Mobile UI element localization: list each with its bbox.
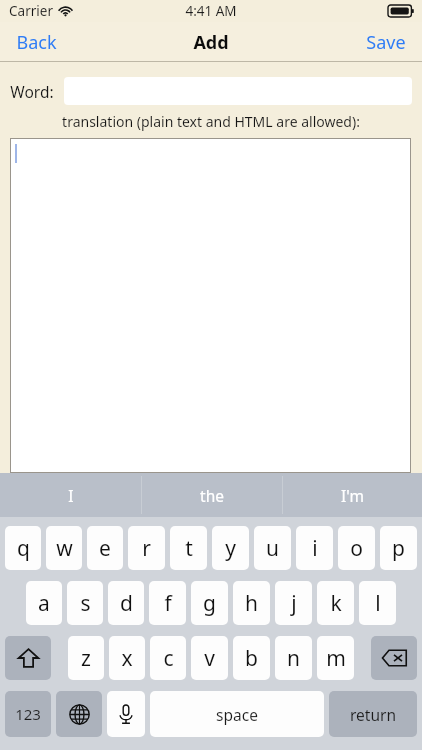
staticText: p: [392, 534, 405, 563]
staticText: 4:41 AM: [185, 2, 237, 20]
staticText: s: [80, 589, 91, 618]
button[interactable]: Dictate: [107, 691, 145, 737]
staticText: k: [330, 589, 342, 618]
staticText: I'm: [341, 485, 364, 506]
staticText: e: [99, 534, 111, 563]
staticText: f: [164, 589, 172, 618]
staticText: w: [56, 534, 73, 563]
staticText: g: [203, 589, 216, 618]
staticText: Word:: [10, 81, 54, 102]
button[interactable]: v: [191, 636, 228, 680]
staticText: o: [350, 534, 363, 563]
staticText: d: [120, 589, 133, 618]
staticText: h: [245, 589, 258, 618]
button[interactable]: I'm: [283, 473, 422, 517]
staticText: I: [68, 485, 74, 506]
button[interactable]: a: [26, 581, 62, 625]
button[interactable]: z: [68, 636, 104, 680]
staticText: Carrier: [9, 2, 53, 20]
button[interactable]: l: [359, 581, 396, 625]
staticText: l: [375, 589, 381, 618]
button[interactable]: p: [380, 526, 417, 570]
staticText: the: [200, 485, 224, 506]
button[interactable]: s: [67, 581, 103, 625]
staticText: translation (plain text and HTML are all…: [62, 112, 360, 131]
button[interactable]: space: [150, 691, 324, 737]
button[interactable]: i: [296, 526, 333, 570]
staticText: z: [81, 644, 91, 673]
button[interactable]: g: [191, 581, 228, 625]
button[interactable]: o: [338, 526, 375, 570]
button[interactable]: t: [170, 526, 207, 570]
staticText: t: [185, 534, 193, 563]
button[interactable]: h: [233, 581, 270, 625]
button[interactable]: j: [275, 581, 312, 625]
staticText: q: [17, 534, 30, 563]
button[interactable]: Back: [0, 24, 71, 61]
button[interactable]: q: [5, 526, 41, 570]
staticText: 123: [15, 704, 41, 724]
staticText: j: [291, 589, 297, 618]
staticText: n: [287, 644, 300, 673]
staticText: c: [163, 644, 174, 673]
button[interactable]: e: [87, 526, 123, 570]
button[interactable]: y: [212, 526, 249, 570]
button[interactable]: f: [149, 581, 186, 625]
staticText: m: [326, 644, 346, 673]
staticText: Back: [16, 30, 57, 55]
button[interactable]: m: [317, 636, 354, 680]
button[interactable]: c: [150, 636, 186, 680]
staticText: v: [204, 644, 215, 673]
staticText: Add: [193, 30, 229, 55]
staticText: return: [350, 704, 396, 725]
button[interactable]: u: [254, 526, 291, 570]
button[interactable]: n: [275, 636, 312, 680]
button[interactable]: Shift: [5, 636, 51, 680]
button[interactable]: d: [108, 581, 144, 625]
staticText: space: [216, 704, 258, 725]
staticText: Save: [366, 30, 406, 55]
button[interactable]: return: [329, 691, 417, 737]
button[interactable]: b: [233, 636, 270, 680]
button[interactable]: w: [46, 526, 82, 570]
staticText: a: [38, 589, 50, 618]
staticText: r: [142, 534, 151, 563]
button[interactable]: Backspace: [371, 636, 417, 680]
button[interactable]: 123: [5, 691, 51, 737]
button[interactable]: Save: [352, 24, 422, 61]
staticText: u: [266, 534, 279, 563]
staticText: i: [312, 534, 318, 563]
button[interactable]: I: [0, 473, 141, 517]
button[interactable]: the: [142, 473, 282, 517]
button[interactable]: k: [317, 581, 354, 625]
button[interactable]: r: [128, 526, 165, 570]
staticText: x: [121, 644, 133, 673]
button[interactable]: x: [109, 636, 145, 680]
staticText: y: [225, 534, 236, 563]
staticText: b: [245, 644, 258, 673]
button[interactable]: Switch keyboard: [56, 691, 102, 737]
